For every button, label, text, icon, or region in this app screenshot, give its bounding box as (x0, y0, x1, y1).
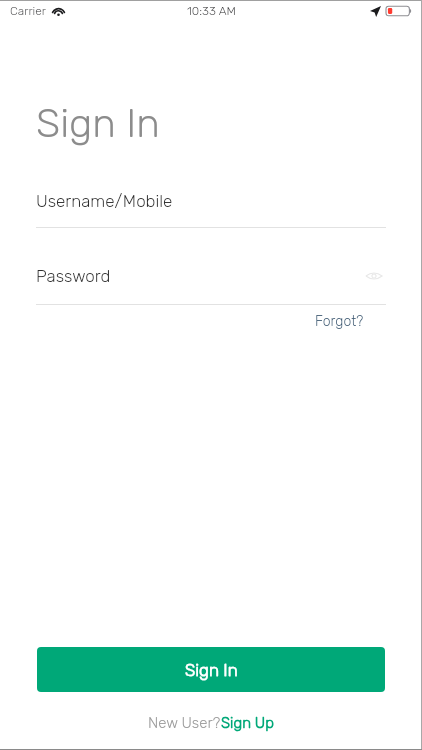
staticText: Sign In (185, 660, 238, 680)
button[interactable]: Sign In (37, 647, 385, 692)
staticText: Username/Mobile (36, 191, 173, 211)
staticText: Sign In (36, 100, 160, 147)
staticText: Password (36, 266, 111, 286)
staticText: New User? (148, 714, 221, 732)
button[interactable]: Show password (362, 264, 386, 288)
staticText: Carrier (10, 4, 47, 18)
staticText: 10:33 AM (187, 4, 236, 18)
button[interactable]: Forgot? (315, 313, 364, 330)
button[interactable]: Sign Up (221, 714, 274, 732)
